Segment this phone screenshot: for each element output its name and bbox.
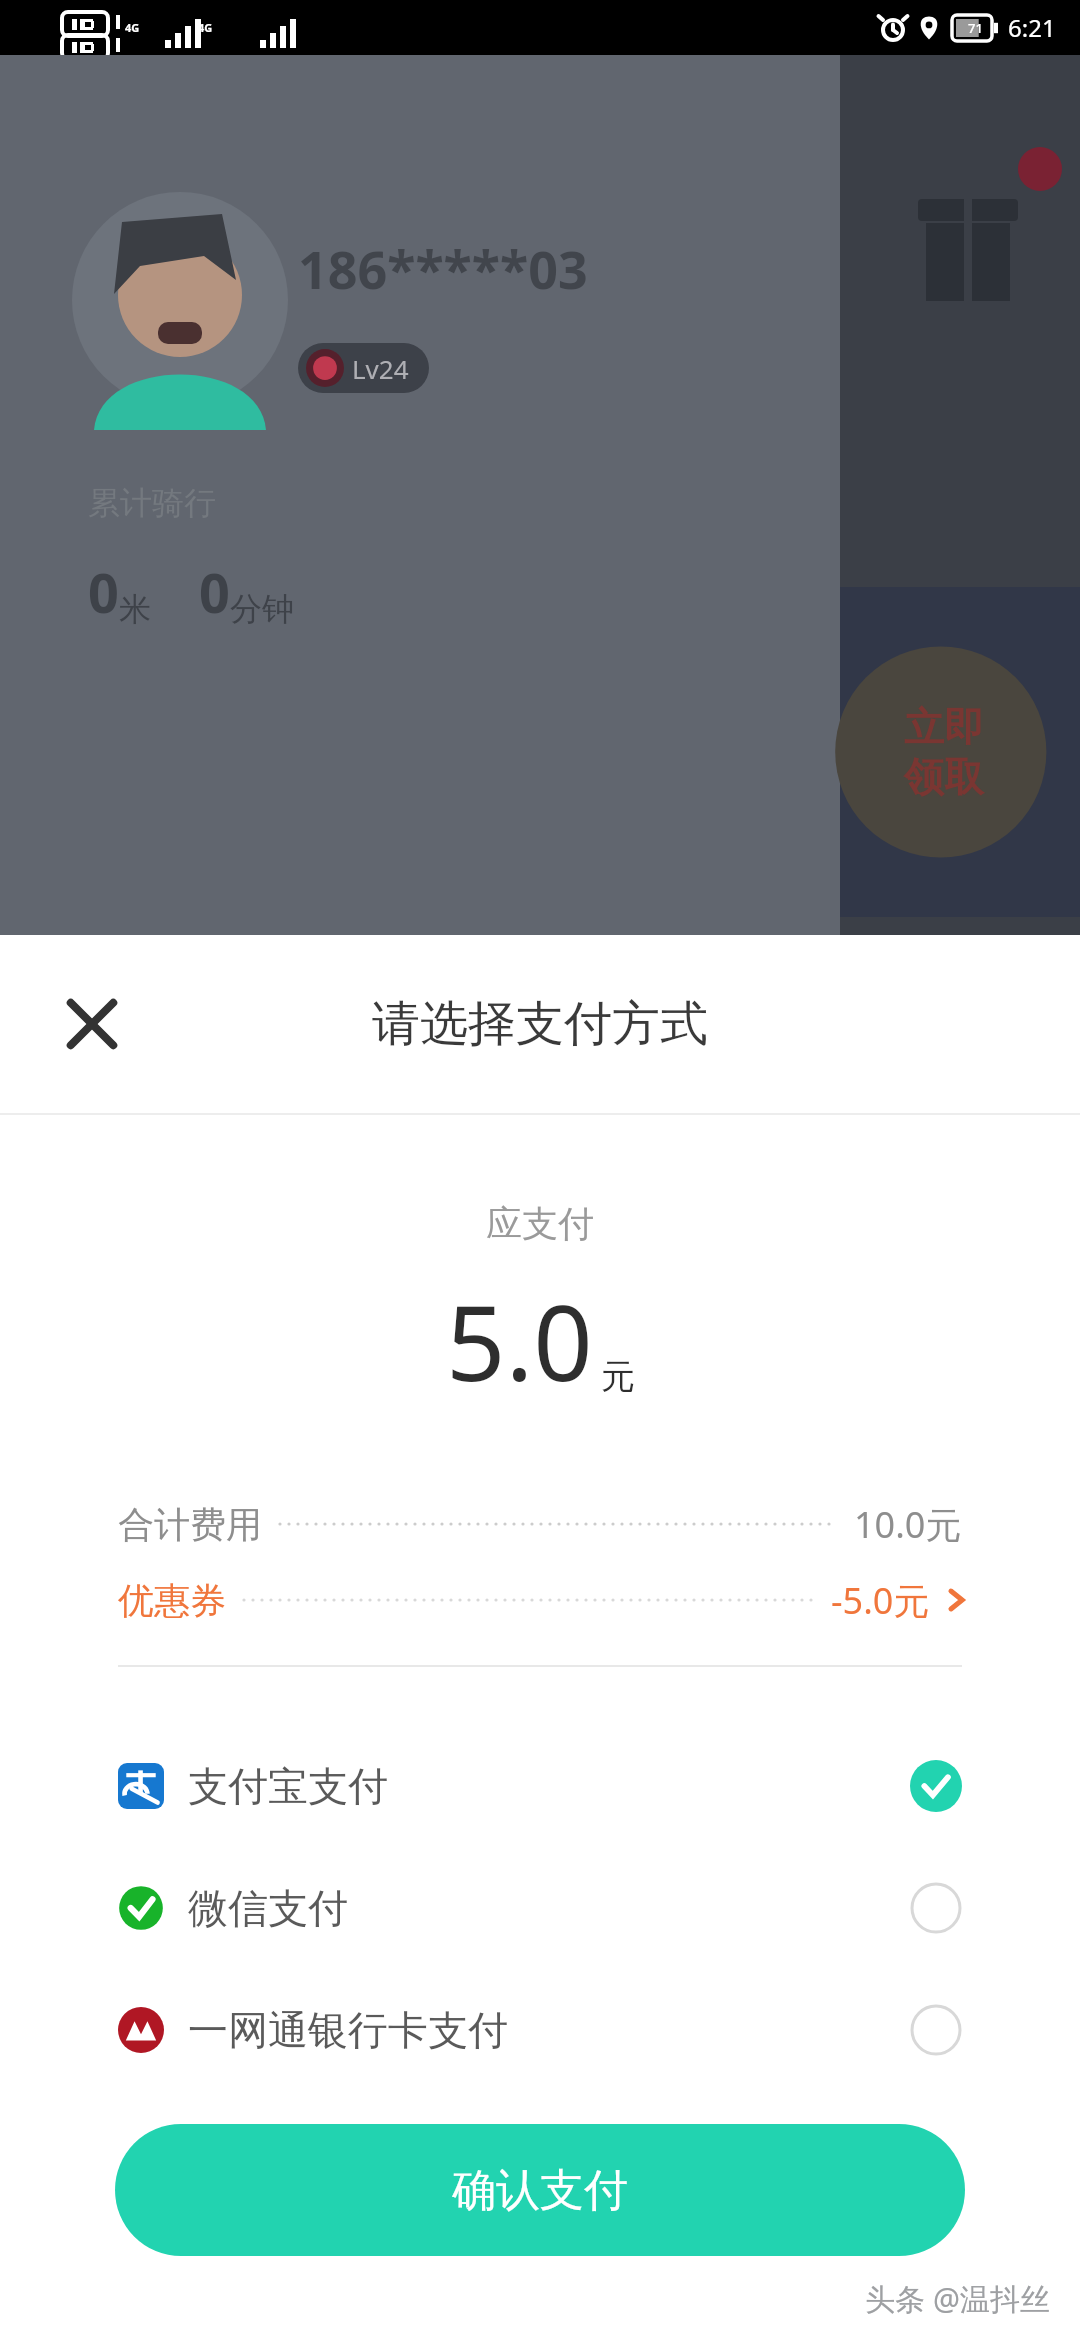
button[interactable]: 优惠券 [118,1562,970,1638]
staticText: 确认支付 [452,2163,628,2218]
staticText: 10.0元 [854,1500,962,1549]
button[interactable]: 微信支付 [118,1847,962,1969]
staticText: 71 [968,19,983,37]
staticText: -5.0元 [831,1576,930,1625]
staticText: 头条 @温抖丝 [865,2278,1050,2319]
staticText: 元 [601,1355,635,1398]
button[interactable]: 一网通银行卡支付 [118,1969,962,2091]
staticText: 6:21 [1008,11,1056,44]
staticText: Lv24 [352,351,409,386]
staticText: 0 [199,555,230,629]
staticText: 微信支付 [188,1883,348,1933]
button[interactable]: 确认支付 [115,2124,965,2256]
staticText: 4G [198,20,213,35]
staticText: 分钟 [230,589,294,629]
staticText: 领取 [904,752,984,802]
staticText: 优惠券 [118,1578,226,1623]
staticText: 0 [88,555,119,629]
staticText: 应支付 [486,1201,594,1246]
button[interactable]: 合计费用 [118,1486,962,1562]
staticText: 请选择支付方式 [372,994,708,1054]
staticText: 合计费用 [118,1502,262,1547]
staticText: 186*****03 [298,233,588,304]
staticText: 米 [119,589,151,629]
button[interactable]: Close [42,974,142,1074]
staticText: 立即 [904,702,984,752]
staticText: 5.0 [446,1270,593,1412]
button[interactable]: 支付宝支付 [118,1725,962,1847]
staticText: 一网通银行卡支付 [188,2005,508,2055]
staticText: 4G [125,20,140,35]
staticText: 支付宝支付 [188,1761,388,1811]
staticText: 累计骑行 [88,483,216,523]
